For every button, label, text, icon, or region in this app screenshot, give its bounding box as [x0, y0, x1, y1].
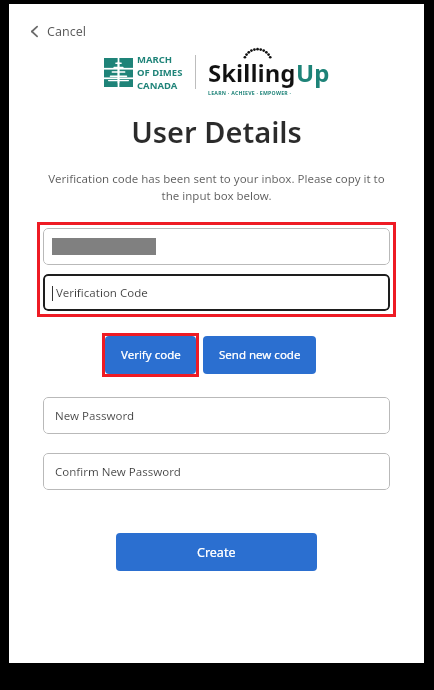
staticText: New Password — [55, 408, 135, 424]
button[interactable]: Create — [116, 533, 317, 571]
staticText: OF DIMES — [137, 66, 183, 79]
button[interactable]: Verify code — [105, 336, 196, 374]
staticText: Send new code — [219, 347, 301, 363]
staticText: Skilling — [208, 56, 296, 89]
button[interactable] — [43, 228, 390, 265]
button[interactable]: Back — [25, 20, 90, 43]
other: Back — [29, 26, 40, 37]
staticText: Create — [197, 544, 236, 561]
staticText: Verify code — [121, 347, 181, 363]
staticText: LEARN · ACHIEVE · EMPOWER · — [208, 89, 292, 96]
staticText: Verification code has been sent to your … — [39, 171, 394, 204]
staticText: Verification Code — [56, 285, 148, 301]
staticText: Confirm New Password — [55, 464, 181, 480]
button[interactable]: New Password — [43, 397, 390, 434]
staticText: Up — [296, 56, 330, 89]
button[interactable]: Send new code — [203, 336, 316, 374]
button[interactable]: Verification Code — [43, 274, 390, 311]
staticText: CANADA — [137, 79, 178, 92]
staticText: MARCH — [137, 53, 173, 66]
staticText: Cancel — [47, 23, 86, 40]
button[interactable]: Confirm New Password — [43, 453, 390, 490]
staticText: User Details — [9, 112, 424, 151]
